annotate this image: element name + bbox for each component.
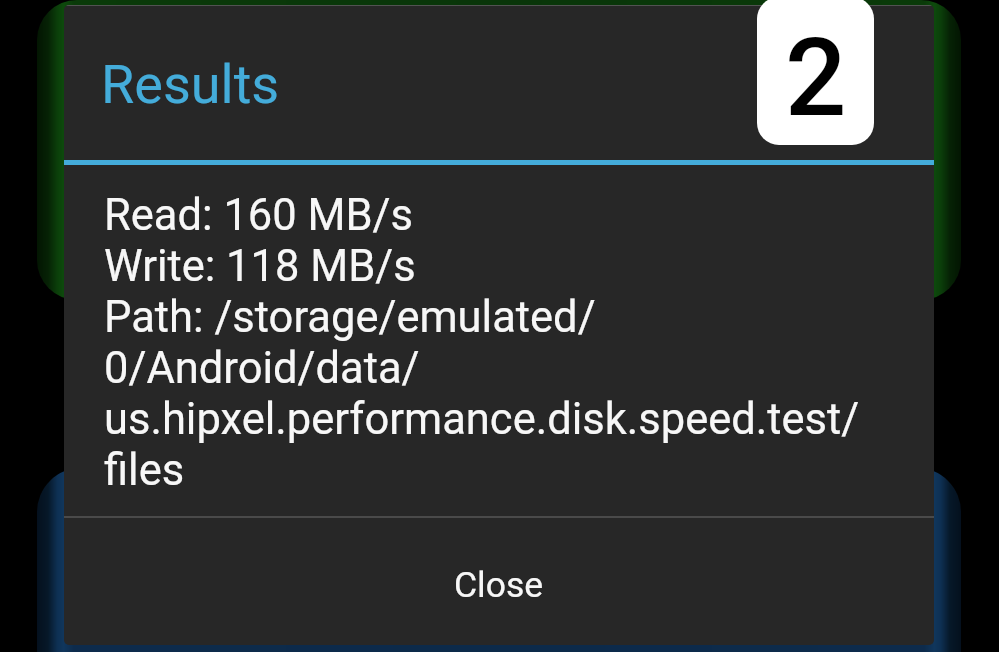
- staticText: Read: 160 MB/s Write: 118 MB/s Path: /st…: [104, 190, 904, 496]
- other: Step 2: [757, 0, 874, 145]
- button[interactable]: Close: [64, 523, 934, 645]
- staticText: Results: [101, 53, 280, 116]
- staticText: Close: [454, 564, 544, 606]
- staticText: 2: [785, 15, 847, 142]
